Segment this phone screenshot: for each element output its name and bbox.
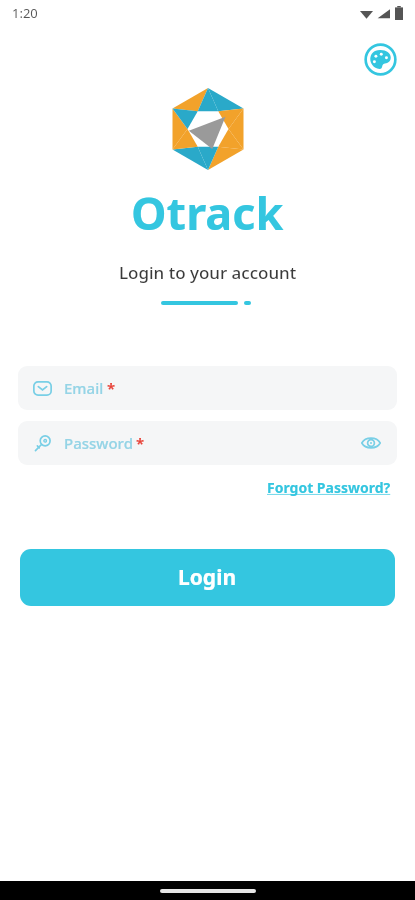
staticText: Login to your account [119,261,297,284]
staticText: 1:20 [12,4,38,22]
button[interactable]: Login [20,549,395,606]
staticText: * [136,433,145,453]
button[interactable]: Show password [359,431,383,455]
staticText: Otrack [131,182,284,243]
button[interactable]: Password [18,421,397,465]
button[interactable]: Email [18,366,397,410]
button[interactable]: Change theme [361,40,399,78]
button[interactable]: Forgot Password? [265,476,393,499]
staticText: Password [64,433,133,453]
staticText: Login [178,563,237,592]
staticText: Email [64,378,104,398]
staticText: * [107,378,116,398]
staticText: Forgot Password? [267,478,391,497]
